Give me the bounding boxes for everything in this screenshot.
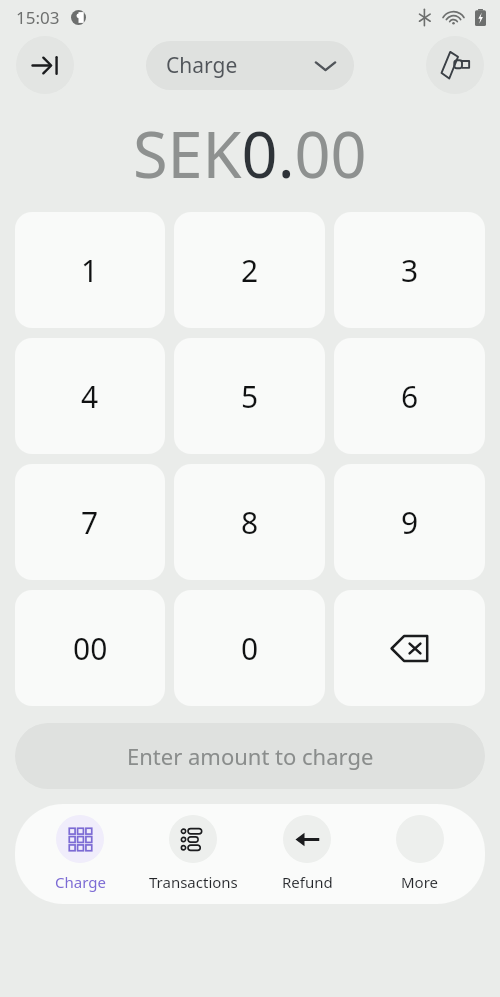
staticText: SEK0.00 <box>133 111 367 197</box>
button[interactable]: 3 <box>334 212 485 328</box>
staticText: 3 <box>401 250 419 291</box>
button[interactable]: Refund <box>253 815 361 892</box>
button[interactable]: Enter amount to charge <box>15 723 485 789</box>
button[interactable]: 4 <box>15 338 165 454</box>
button[interactable]: 6 <box>334 338 485 454</box>
button[interactable]: Charge <box>26 815 134 892</box>
staticText: More <box>401 872 439 892</box>
staticText: Enter amount to charge <box>127 741 374 771</box>
button[interactable]: More <box>366 815 474 892</box>
button[interactable]: 0 <box>174 590 325 706</box>
button[interactable]: 7 <box>15 464 165 580</box>
staticText: Refund <box>282 872 333 892</box>
staticText: 8 <box>241 502 259 543</box>
staticText: 6 <box>401 376 419 417</box>
button[interactable]: Backspace <box>334 590 485 706</box>
button[interactable]: Tap to pay <box>426 36 484 94</box>
button[interactable]: 9 <box>334 464 485 580</box>
button[interactable]: Sign out <box>16 36 74 94</box>
staticText: 2 <box>241 250 259 291</box>
staticText: Charge <box>166 51 238 80</box>
staticText: 0 <box>241 628 259 669</box>
button[interactable]: 2 <box>174 212 325 328</box>
button[interactable]: 00 <box>15 590 165 706</box>
staticText: 5 <box>241 376 259 417</box>
button[interactable]: 5 <box>174 338 325 454</box>
staticText: 4 <box>81 376 99 417</box>
staticText: 7 <box>81 502 99 543</box>
staticText: 00 <box>73 628 108 669</box>
button[interactable]: Charge <box>146 41 354 90</box>
staticText: 9 <box>401 502 419 543</box>
staticText: 15:03 <box>16 6 60 29</box>
button[interactable]: 8 <box>174 464 325 580</box>
button[interactable]: 1 <box>15 212 165 328</box>
staticText: Charge <box>55 872 106 892</box>
button[interactable]: Transactions <box>139 815 247 892</box>
staticText: Transactions <box>149 872 238 892</box>
staticText: 1 <box>81 250 99 291</box>
